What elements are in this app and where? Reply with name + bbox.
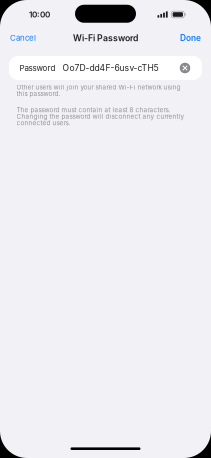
staticText: Password (19, 63, 55, 73)
button[interactable]: Password (9, 56, 202, 80)
staticText: Done (180, 33, 201, 43)
button[interactable]: Clear text (177, 60, 193, 76)
staticText: Wi-Fi Password (73, 33, 138, 43)
staticText: Oo7D-dd4F-6usv-cTH5 (62, 63, 158, 73)
button[interactable]: Cancel (0, 28, 46, 48)
staticText: Other users will join your shared Wi-Fi … (16, 83, 180, 98)
staticText: 10:00 (29, 10, 50, 19)
button[interactable]: Done (170, 28, 211, 48)
staticText: The password must contain at least 8 cha… (16, 106, 184, 127)
staticText: Cancel (10, 33, 36, 43)
